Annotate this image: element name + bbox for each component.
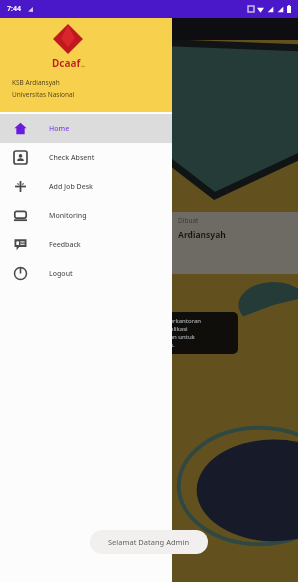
staticText: Home [49, 124, 70, 134]
staticText: an. [166, 341, 175, 349]
staticText: Monitoring [49, 211, 87, 221]
button[interactable]: Selamat Datang Admin [90, 530, 208, 554]
staticText: Add Job Desk [49, 182, 94, 192]
button[interactable]: Home [0, 114, 172, 143]
button[interactable]: Feedback [0, 230, 172, 259]
staticText: Selamat Datang Admin [108, 537, 190, 547]
staticText: Universitas Nasional [12, 90, 75, 99]
staticText: 7:44 [7, 4, 21, 14]
staticText: Aplikasi [166, 325, 188, 333]
staticText: Perkantoran [166, 317, 201, 325]
staticText: Feedback [49, 240, 81, 250]
button[interactable]: Monitoring [0, 201, 172, 230]
button[interactable]: Check Absent [0, 143, 172, 172]
staticText: Dibuat [178, 216, 199, 225]
other: Home [14, 122, 27, 135]
staticText: KSB Ardiansyah [12, 78, 60, 87]
staticText: .. [81, 60, 85, 70]
button[interactable]: Add Job Desk [0, 172, 172, 201]
staticText: Check Absent [49, 153, 95, 163]
staticText: Ardiansyah [178, 229, 226, 241]
staticText: Dcaaf [52, 56, 81, 70]
button[interactable]: Logout [0, 259, 172, 288]
staticText: Logout [49, 269, 73, 279]
staticText: pan untuk [166, 333, 195, 341]
